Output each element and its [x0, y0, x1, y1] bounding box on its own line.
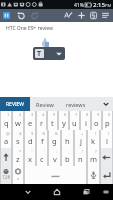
button[interactable]: ! — [75, 148, 86, 166]
button[interactable]: 0 — [103, 111, 112, 130]
staticText: * — [19, 149, 22, 154]
staticText: 9 — [97, 112, 100, 117]
button[interactable]: Screenshot — [99, 184, 113, 200]
staticText: u — [72, 118, 77, 128]
staticText: a — [4, 136, 9, 146]
button[interactable]: More suggestions — [98, 97, 113, 111]
staticText: b — [65, 154, 70, 164]
button[interactable]: ( — [88, 130, 99, 148]
button[interactable]: # — [13, 130, 23, 148]
button[interactable]: ; — [62, 148, 73, 166]
button[interactable]: More options — [99, 9, 111, 22]
button[interactable]: Space — [25, 166, 86, 184]
staticText: ! — [82, 149, 84, 154]
button[interactable]: Backspace — [101, 148, 112, 166]
button[interactable]: 5 — [48, 111, 57, 130]
button[interactable]: * — [13, 148, 23, 166]
staticText: c — [40, 154, 44, 164]
button[interactable]: 4 — [37, 111, 46, 130]
staticText: & — [55, 131, 58, 136]
staticText: f — [41, 136, 44, 146]
staticText: 41% — [74, 2, 84, 9]
staticText: 2 — [19, 112, 22, 117]
button[interactable]: Comma — [13, 166, 23, 184]
button[interactable]: Redo — [28, 9, 40, 22]
button[interactable]: @ — [1, 130, 11, 148]
staticText: - — [69, 131, 71, 136]
button[interactable]: Expand formatting — [54, 49, 64, 59]
button[interactable]: Docs — [1, 9, 12, 22]
staticText: g — [52, 136, 57, 146]
button[interactable]: reviews — [60, 97, 91, 111]
staticText: 3 — [31, 112, 34, 117]
button[interactable]: 8 — [81, 111, 90, 130]
button[interactable]: Comment — [87, 9, 99, 22]
button[interactable]: 3 — [25, 111, 35, 130]
staticText: m — [90, 154, 98, 164]
button[interactable]: Enter — [101, 166, 112, 184]
staticText: 8 — [86, 112, 89, 117]
button[interactable]: Insert — [75, 9, 87, 22]
staticText: x — [28, 154, 32, 164]
staticText: ; — [69, 149, 71, 154]
button[interactable]: Recent apps — [79, 184, 93, 200]
button[interactable]: 9 — [92, 111, 101, 130]
staticText: % — [42, 131, 46, 136]
staticText: 6 — [64, 112, 67, 117]
button[interactable]: 6 — [59, 111, 68, 130]
button[interactable]: ? — [88, 148, 99, 166]
staticText: s — [16, 136, 20, 146]
button[interactable]: 7 — [70, 111, 79, 130]
button[interactable]: ) — [101, 130, 112, 148]
staticText: + — [81, 131, 84, 136]
staticText: i — [85, 118, 87, 128]
button[interactable]: REVIEW — [0, 97, 30, 111]
button[interactable]: Undo — [15, 9, 27, 22]
button[interactable]: - — [62, 130, 73, 148]
button[interactable]: ' — [37, 148, 47, 166]
button[interactable]: 2 — [13, 111, 23, 130]
button[interactable]: " — [25, 148, 35, 166]
button[interactable]: Voice input — [88, 166, 99, 184]
staticText: HTC One E9+ review — [6, 25, 53, 32]
staticText: 4 — [42, 112, 45, 117]
staticText: r — [40, 118, 44, 128]
staticText: ' — [44, 149, 45, 154]
staticText: z — [16, 154, 20, 164]
staticText: t — [51, 118, 54, 128]
staticText: l — [106, 136, 108, 146]
staticText: o — [94, 118, 99, 128]
staticText: k — [91, 136, 96, 146]
staticText: reviews — [66, 101, 86, 108]
staticText: 5 — [53, 112, 56, 117]
button[interactable]: Symbols — [1, 166, 11, 184]
staticText: " — [31, 149, 33, 154]
staticText: : — [56, 149, 58, 154]
button[interactable]: % — [37, 130, 47, 148]
staticText: j — [80, 136, 82, 146]
staticText: 1 — [7, 112, 10, 117]
staticText: n — [78, 154, 83, 164]
button[interactable]: Home — [50, 184, 64, 200]
button[interactable]: Shift — [1, 148, 11, 166]
staticText: REVIEW — [6, 101, 25, 108]
staticText: $ — [31, 131, 34, 136]
staticText: v — [53, 154, 57, 164]
staticText: # — [19, 131, 22, 136]
button[interactable]: $ — [25, 130, 35, 148]
staticText: 2:15 — [93, 1, 105, 9]
button[interactable]: Text formatting — [62, 9, 74, 22]
button[interactable]: 1 — [1, 111, 11, 130]
button[interactable]: Hide keyboard — [21, 184, 35, 200]
button[interactable]: + — [75, 130, 86, 148]
staticText: d — [28, 136, 33, 146]
staticText: 7 — [75, 112, 78, 117]
button[interactable]: Review — [30, 97, 60, 111]
button[interactable]: T — [35, 49, 44, 58]
staticText: ( — [95, 131, 97, 136]
button[interactable]: & — [49, 130, 60, 148]
button[interactable]: : — [49, 148, 60, 166]
staticText: ? — [95, 149, 97, 154]
staticText: e — [28, 118, 33, 128]
staticText: h — [65, 136, 70, 146]
